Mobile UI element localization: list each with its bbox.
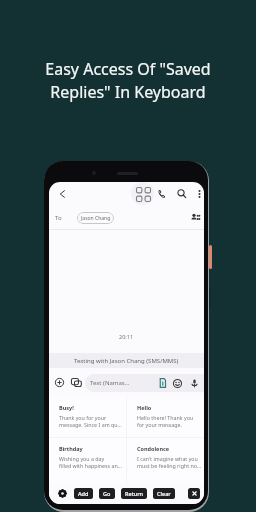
staticText: Go bbox=[103, 490, 111, 497]
staticText: Jason Chang bbox=[81, 215, 111, 222]
staticText: Easy Access Of "Saved Replies" In Keyboa… bbox=[0, 58, 256, 103]
button[interactable]: Settings bbox=[56, 487, 69, 500]
button[interactable]: Search bbox=[173, 185, 191, 203]
staticText: Thank you for your message. Since I am q… bbox=[59, 414, 122, 429]
button[interactable]: Condolence bbox=[127, 438, 204, 483]
button[interactable]: Apps bbox=[131, 182, 154, 205]
staticText: To bbox=[55, 214, 62, 222]
staticText: 20:11 bbox=[119, 333, 134, 340]
staticText: Condolence bbox=[137, 445, 170, 452]
button[interactable]: Close bbox=[188, 488, 200, 499]
button[interactable]: Text (Namas… bbox=[85, 374, 204, 392]
staticText: Return bbox=[125, 490, 143, 497]
staticText: Text (Namas… bbox=[90, 379, 130, 387]
staticText: Busy! bbox=[59, 404, 74, 411]
button[interactable]: Busy! bbox=[49, 397, 126, 437]
button[interactable]: Birthday bbox=[49, 438, 126, 483]
button[interactable]: Insert image bbox=[69, 375, 84, 390]
button[interactable]: Hello bbox=[127, 397, 204, 437]
staticText: Hello bbox=[137, 404, 152, 411]
button[interactable]: Back bbox=[52, 184, 72, 204]
staticText: Clear bbox=[157, 490, 171, 497]
button[interactable]: Add bbox=[74, 488, 93, 499]
staticText: Hello there! Thank you for your message. bbox=[137, 414, 194, 429]
button[interactable]: More options bbox=[193, 187, 204, 200]
staticText: Wishing you a day filled with happiness … bbox=[59, 455, 122, 470]
button[interactable]: Go bbox=[99, 488, 115, 499]
button[interactable]: Add recipient bbox=[188, 210, 202, 224]
staticText: I can't imagine what you must be feeling… bbox=[137, 455, 202, 470]
staticText: Texting with Jason Chang (SMS/MMS) bbox=[74, 357, 179, 365]
staticText: Birthday bbox=[59, 445, 83, 452]
button[interactable]: Call bbox=[153, 185, 171, 203]
button[interactable]: Return bbox=[121, 488, 147, 499]
button[interactable]: Jason Chang bbox=[77, 212, 114, 224]
button[interactable]: Clear bbox=[153, 488, 175, 499]
staticText: Add bbox=[78, 490, 89, 497]
button[interactable]: Attach bbox=[52, 375, 67, 390]
